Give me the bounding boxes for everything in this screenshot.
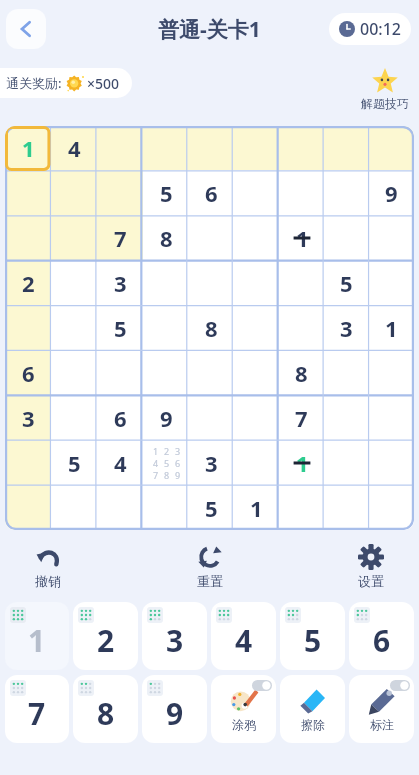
button[interactable] xyxy=(369,350,414,395)
button[interactable]: 2 xyxy=(5,260,51,305)
button[interactable]: 3 xyxy=(142,602,207,670)
button[interactable] xyxy=(369,440,414,485)
button[interactable]: 9 xyxy=(143,395,189,440)
button[interactable]: 8 xyxy=(189,305,234,350)
button[interactable] xyxy=(51,395,97,440)
button[interactable] xyxy=(324,170,369,215)
button[interactable]: 撤销 xyxy=(18,544,78,589)
button[interactable] xyxy=(5,440,51,485)
button[interactable] xyxy=(279,126,324,170)
button[interactable] xyxy=(97,485,143,530)
button[interactable] xyxy=(189,395,234,440)
button[interactable]: 5 xyxy=(51,440,97,485)
button[interactable]: 1 xyxy=(369,305,414,350)
button[interactable]: 8 xyxy=(143,215,189,260)
button[interactable] xyxy=(143,260,189,305)
button[interactable] xyxy=(143,350,189,395)
button[interactable] xyxy=(324,126,369,170)
button[interactable] xyxy=(97,170,143,215)
button[interactable]: 通关奖励: xyxy=(6,68,120,98)
button[interactable] xyxy=(143,485,189,530)
button[interactable]: 1 xyxy=(5,602,69,670)
button[interactable] xyxy=(51,485,97,530)
button[interactable]: 3 xyxy=(97,260,143,305)
button[interactable] xyxy=(5,305,51,350)
button[interactable]: 6 xyxy=(97,395,143,440)
button[interactable]: 8 xyxy=(279,350,324,395)
button[interactable] xyxy=(51,260,97,305)
button[interactable] xyxy=(5,215,51,260)
button[interactable]: 7 xyxy=(279,395,324,440)
button[interactable]: 5 xyxy=(189,485,234,530)
button[interactable]: 1 xyxy=(234,485,279,530)
button[interactable]: 1 xyxy=(279,215,324,260)
button[interactable]: 重置 xyxy=(180,544,240,589)
button[interactable] xyxy=(279,260,324,305)
button[interactable]: 7 xyxy=(97,215,143,260)
button[interactable]: 2 xyxy=(73,602,138,670)
button[interactable]: 涂鸦 xyxy=(211,675,276,743)
button[interactable] xyxy=(279,170,324,215)
button[interactable] xyxy=(324,350,369,395)
button[interactable]: 7 xyxy=(5,675,69,743)
button[interactable] xyxy=(97,126,143,170)
button[interactable]: 5 xyxy=(143,170,189,215)
button[interactable]: 5 xyxy=(97,305,143,350)
button[interactable]: 1 xyxy=(5,126,51,170)
button[interactable] xyxy=(5,170,51,215)
button[interactable] xyxy=(234,260,279,305)
button[interactable] xyxy=(369,395,414,440)
button[interactable]: 6 xyxy=(349,602,414,670)
button[interactable]: 1 xyxy=(279,440,324,485)
button[interactable] xyxy=(369,260,414,305)
button[interactable] xyxy=(51,305,97,350)
button[interactable]: 解题技巧 xyxy=(361,67,409,111)
button[interactable] xyxy=(279,485,324,530)
button[interactable] xyxy=(279,305,324,350)
button[interactable]: Back xyxy=(6,9,46,49)
button[interactable]: 5 xyxy=(324,260,369,305)
button[interactable] xyxy=(189,215,234,260)
button[interactable]: 擦除 xyxy=(280,675,345,743)
button[interactable]: 8 xyxy=(73,675,138,743)
button[interactable] xyxy=(51,215,97,260)
button[interactable] xyxy=(97,350,143,395)
button[interactable] xyxy=(143,126,189,170)
button[interactable] xyxy=(324,215,369,260)
button[interactable] xyxy=(234,395,279,440)
button[interactable] xyxy=(143,305,189,350)
button[interactable]: 标注 xyxy=(349,675,414,743)
button[interactable]: 4 xyxy=(97,440,143,485)
button[interactable] xyxy=(234,305,279,350)
button[interactable] xyxy=(51,170,97,215)
button[interactable]: 5 xyxy=(280,602,345,670)
button[interactable]: 3 xyxy=(324,305,369,350)
button[interactable] xyxy=(324,395,369,440)
button[interactable]: 4 xyxy=(51,126,97,170)
button[interactable]: 9 xyxy=(142,675,207,743)
button[interactable] xyxy=(324,485,369,530)
button[interactable] xyxy=(369,215,414,260)
button[interactable] xyxy=(234,170,279,215)
button[interactable]: 3 xyxy=(5,395,51,440)
button[interactable] xyxy=(189,260,234,305)
button[interactable]: 4 xyxy=(211,602,276,670)
button[interactable]: 9 xyxy=(369,170,414,215)
button[interactable] xyxy=(234,440,279,485)
button[interactable] xyxy=(324,440,369,485)
button[interactable]: 设置 xyxy=(341,544,401,589)
button[interactable] xyxy=(5,485,51,530)
button[interactable] xyxy=(234,350,279,395)
button[interactable] xyxy=(51,350,97,395)
button[interactable]: 6 xyxy=(189,170,234,215)
button[interactable]: 6 xyxy=(5,350,51,395)
button[interactable] xyxy=(234,126,279,170)
button[interactable] xyxy=(189,350,234,395)
button[interactable] xyxy=(234,215,279,260)
button[interactable]: 00:12 xyxy=(339,13,401,45)
button[interactable] xyxy=(189,126,234,170)
button[interactable]: 3 xyxy=(189,440,234,485)
button[interactable]: 1 xyxy=(143,440,189,485)
button[interactable] xyxy=(369,126,414,170)
button[interactable] xyxy=(369,485,414,530)
